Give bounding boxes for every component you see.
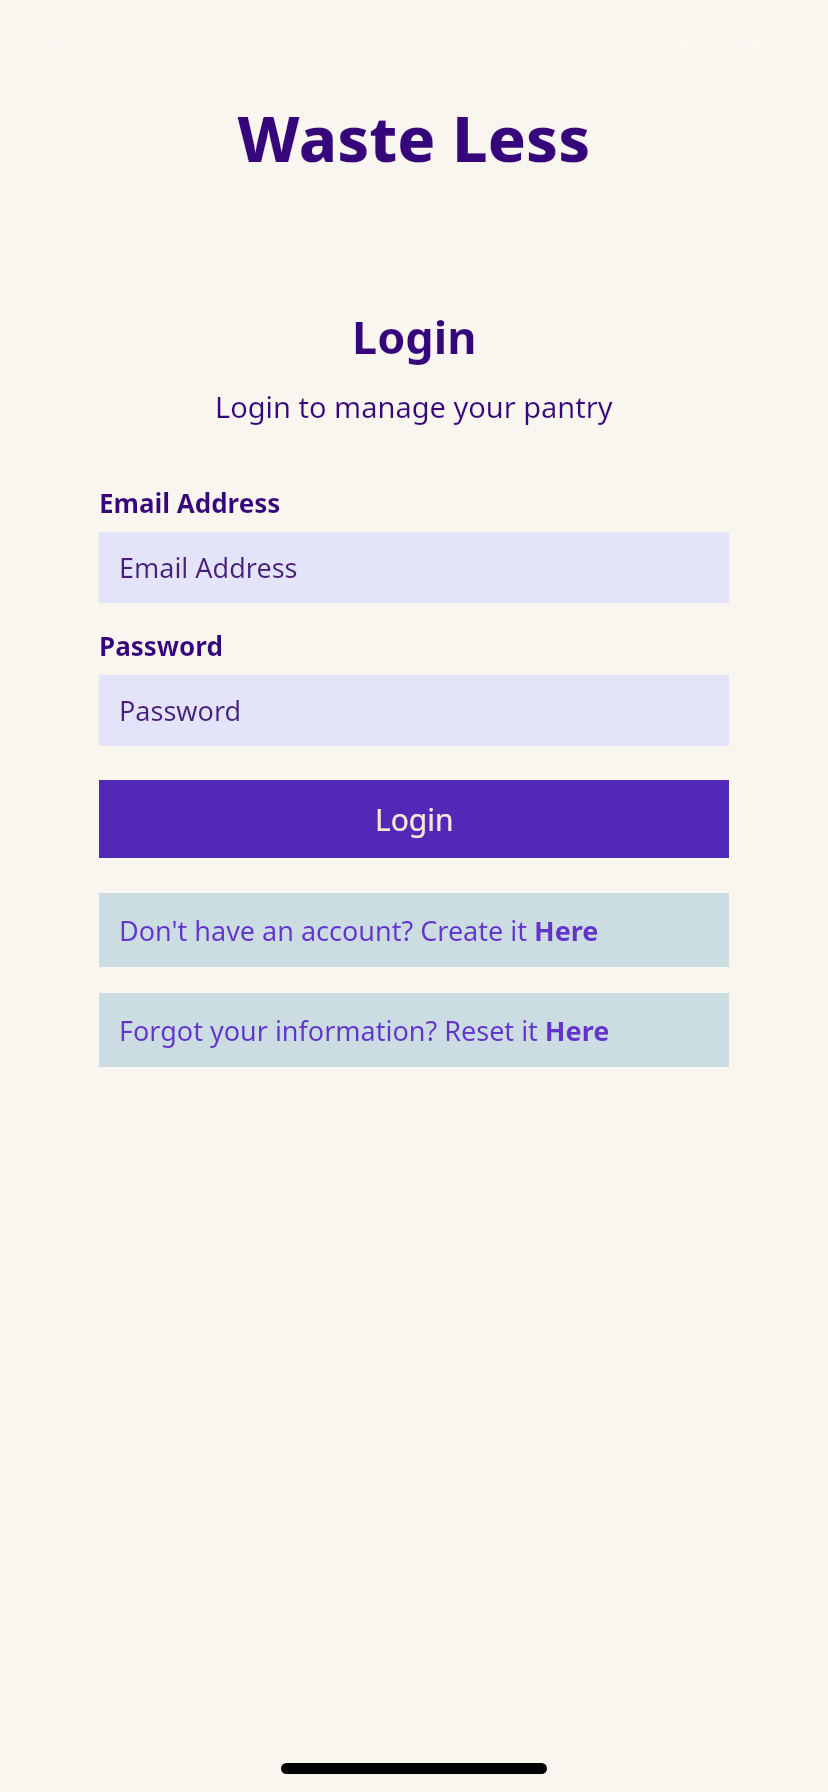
button[interactable]: Email Address	[99, 532, 729, 603]
button[interactable]: Forgot your information? Reset it Here	[99, 993, 729, 1067]
staticText: Don't have an account? Create it Here	[119, 912, 599, 949]
staticText: Login to manage your pantry	[215, 387, 613, 426]
staticText: Email Address	[119, 549, 298, 586]
staticText: Login	[352, 306, 477, 367]
staticText: Login	[375, 799, 454, 840]
staticText: Forgot your information? Reset it Here	[119, 1012, 610, 1049]
button[interactable]: Password	[99, 675, 729, 746]
staticText: Waste Less	[237, 95, 591, 181]
button[interactable]: Login	[99, 780, 729, 858]
other: Home indicator	[281, 1763, 547, 1774]
staticText: Password	[119, 692, 242, 729]
staticText: Password	[99, 628, 223, 663]
staticText: Email Address	[99, 485, 281, 520]
button[interactable]: Don't have an account? Create it Here	[99, 893, 729, 967]
